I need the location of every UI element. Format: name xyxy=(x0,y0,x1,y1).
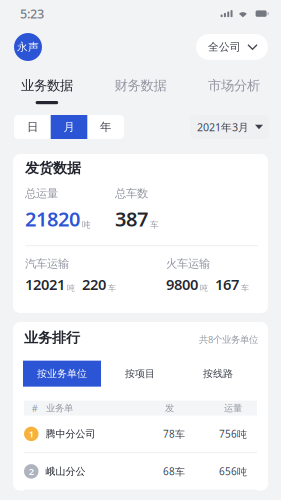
staticText: 永声 xyxy=(17,40,39,54)
staticText: 发 xyxy=(165,402,174,414)
button[interactable]: 1 xyxy=(13,416,268,452)
staticText: 吨 xyxy=(200,283,208,293)
button[interactable]: 业务数据 xyxy=(0,78,94,110)
staticText: 吨 xyxy=(82,219,91,230)
staticText: 总车数 xyxy=(115,186,148,201)
button[interactable]: 永声 xyxy=(14,33,42,61)
staticText: 167 xyxy=(215,274,239,294)
button[interactable]: 2021年3月 xyxy=(190,115,269,139)
staticText: 吨 xyxy=(67,283,75,293)
staticText: 财务数据 xyxy=(114,77,166,94)
staticText: 656吨 xyxy=(219,465,247,478)
staticText: 按线路 xyxy=(203,367,233,380)
staticText: 1 xyxy=(29,427,34,440)
button[interactable]: 全公司 xyxy=(196,34,268,60)
staticText: 日 xyxy=(27,120,38,134)
staticText: 运量 xyxy=(224,402,242,414)
staticText: 21820 xyxy=(25,205,80,232)
staticText: 市场分析 xyxy=(208,77,260,94)
button[interactable]: 按项目 xyxy=(101,361,179,387)
staticText: 业务数据 xyxy=(21,77,73,94)
staticText: 9800 xyxy=(166,274,198,294)
staticText: 车 xyxy=(150,219,159,230)
staticText: # xyxy=(32,402,38,414)
button[interactable]: 年 xyxy=(87,115,124,139)
staticText: 汽车运输 xyxy=(25,257,69,271)
staticText: 68车 xyxy=(163,465,185,478)
staticText: 火车运输 xyxy=(166,257,210,271)
staticText: 共8个业务单位 xyxy=(199,333,258,346)
staticText: 月 xyxy=(63,120,74,134)
staticText: 5:23 xyxy=(20,5,44,22)
button[interactable]: 财务数据 xyxy=(94,78,187,110)
staticText: 峨山分公 xyxy=(45,465,85,478)
staticText: 腾中分公司 xyxy=(45,428,95,440)
staticText: 按项目 xyxy=(125,367,155,380)
staticText: 业务排行 xyxy=(24,329,80,347)
staticText: 业务单 xyxy=(46,402,73,414)
staticText: 12021 xyxy=(25,274,65,294)
staticText: 年 xyxy=(100,120,111,134)
staticText: 756吨 xyxy=(219,427,247,441)
button[interactable]: 按线路 xyxy=(179,361,257,387)
staticText: 按业务单位 xyxy=(37,367,87,380)
staticText: 387 xyxy=(115,205,148,232)
staticText: 车 xyxy=(108,283,116,293)
staticText: 总运量 xyxy=(25,186,58,201)
staticText: 全公司 xyxy=(208,40,241,54)
button[interactable]: 市场分析 xyxy=(187,78,281,110)
staticText: 220 xyxy=(82,274,106,294)
button[interactable]: 2 xyxy=(13,453,268,490)
staticText: 2 xyxy=(29,465,34,478)
button[interactable]: 按业务单位 xyxy=(23,361,101,387)
button[interactable]: 日 xyxy=(14,115,51,139)
staticText: 2021年3月 xyxy=(197,120,249,134)
button[interactable]: 月 xyxy=(51,115,87,139)
staticText: 发货数据 xyxy=(25,159,81,177)
staticText: 78车 xyxy=(163,427,185,441)
staticText: 车 xyxy=(241,283,249,293)
